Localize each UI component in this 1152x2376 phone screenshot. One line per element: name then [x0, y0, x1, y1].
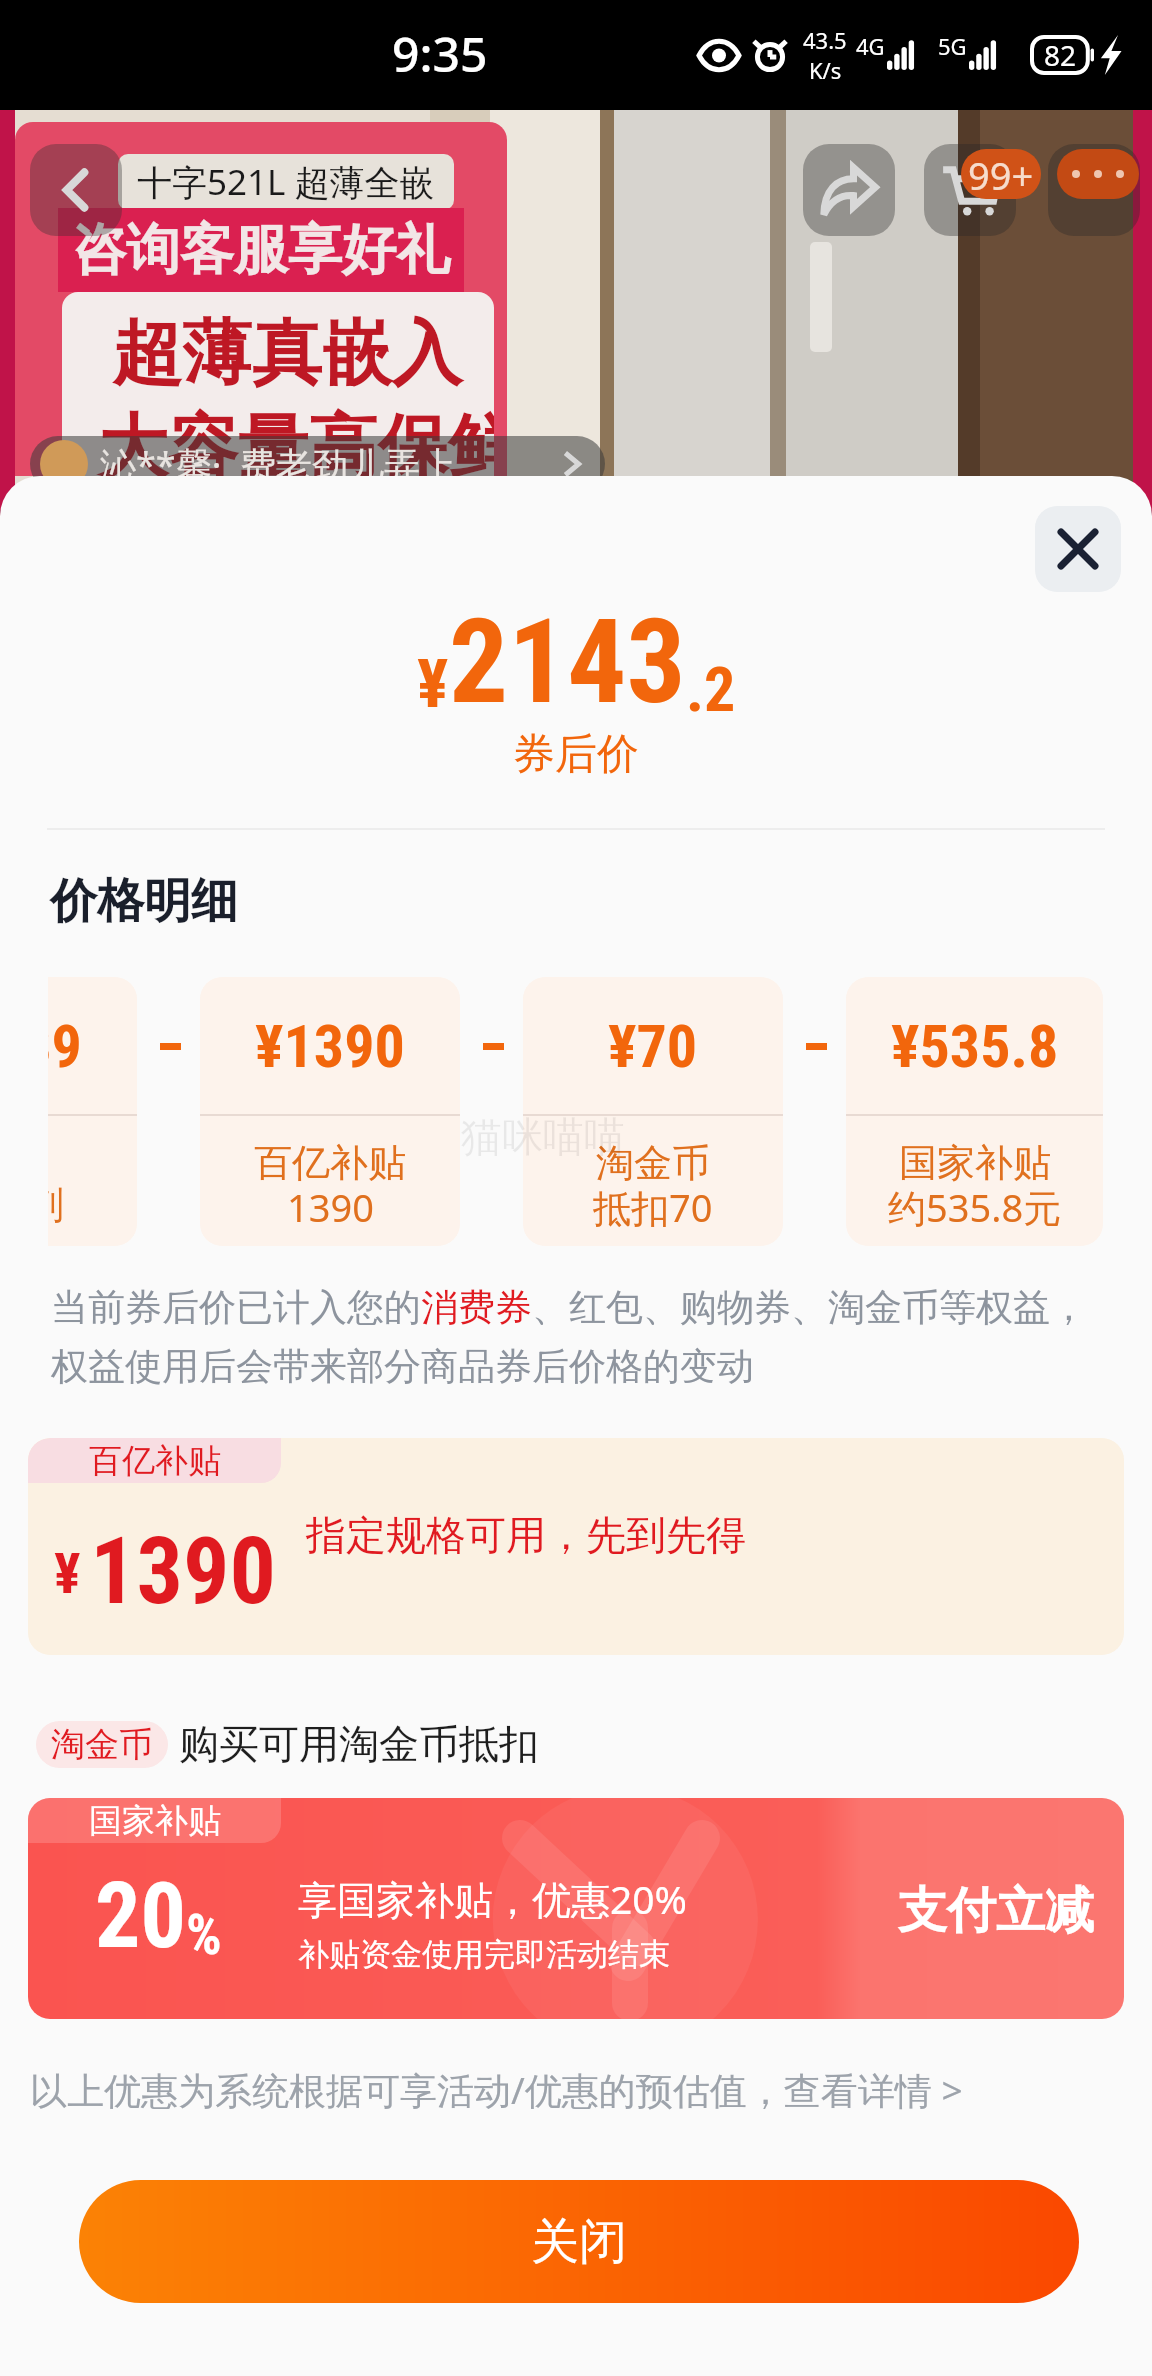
staticText: 淘金币 [51, 1723, 153, 1766]
staticText: 淘金币 [596, 1139, 710, 1187]
staticText: 权益使用后会带来部分商品券后价格的变动 [51, 1343, 754, 1390]
button[interactable]: Back [30, 144, 122, 236]
staticText: 关闭 [531, 2212, 627, 2272]
staticText: 猫咪喵喵 [461, 1112, 625, 1164]
staticText: 指定规格可用，先到先得 [306, 1510, 746, 1560]
staticText: 以上优惠为系统根据可享活动/优惠的预估值，查看详情 > [30, 2064, 963, 2115]
staticText: ¥4139 [48, 1011, 82, 1081]
staticText: ¥ [54, 1541, 81, 1607]
staticText: % [186, 1902, 222, 1968]
staticText: 补贴资金使用完即活动结束 [298, 1935, 670, 1974]
button[interactable]: Close [1035, 506, 1121, 592]
staticText: 券后价 [0, 728, 1152, 781]
button[interactable]: 国家补贴 [28, 1798, 1124, 2019]
staticText: 十字521L 超薄全嵌 [137, 158, 435, 206]
staticText: 沁**馨· 费老劲儿弄上 [100, 440, 457, 489]
staticText: 支付立减 [898, 1880, 1094, 1942]
button[interactable]: Cart [924, 144, 1016, 236]
staticText: 消费券 [421, 1284, 532, 1331]
staticText: 20 [95, 1864, 186, 1969]
staticText: 2143 [449, 593, 686, 730]
button[interactable]: More [1048, 144, 1140, 236]
staticText: 99+ [968, 149, 1034, 199]
button[interactable]: 百亿补贴 [28, 1438, 1124, 1655]
staticText: ¥535.8 [891, 1011, 1059, 1081]
staticText: 到手剂 [48, 1181, 64, 1229]
button[interactable]: 关闭 [79, 2180, 1079, 2303]
staticText: 国家补贴 [89, 1800, 221, 1842]
staticText: 购买可用淘金币抵扣 [179, 1719, 539, 1769]
staticText: 大容量高保鲜 [98, 404, 494, 476]
staticText: 超薄真嵌入 [112, 310, 462, 398]
staticText: K/s [809, 55, 842, 85]
staticText: 1390 [287, 1181, 374, 1233]
staticText: 、红包、购物券、淘金币等权益， [532, 1284, 1087, 1331]
staticText: 享国家补贴，优惠20% [298, 1872, 688, 1925]
staticText: ¥ [417, 646, 449, 723]
staticText: ¥70 [608, 1011, 698, 1081]
staticText: 43.5 [803, 25, 847, 55]
staticText: 抵扣70 [593, 1181, 713, 1233]
staticText: 价格明细 [50, 872, 238, 931]
staticText: 9:35 [392, 21, 488, 86]
staticText: 5G [938, 31, 967, 61]
staticText: 百亿补贴 [254, 1139, 406, 1187]
staticText: ¥1390 [255, 1011, 405, 1081]
staticText: .2 [686, 653, 736, 726]
staticText: 国家补贴 [899, 1139, 1051, 1187]
button[interactable]: Share [803, 144, 895, 236]
staticText: 约535.8元 [888, 1181, 1062, 1233]
staticText: 当前券后价已计入您的 [51, 1284, 421, 1331]
staticText: 百亿补贴 [89, 1440, 221, 1482]
staticText: 4G [856, 31, 885, 61]
staticText: 82 [1044, 36, 1077, 74]
staticText: 1390 [90, 1518, 276, 1626]
staticText: 咨询客服享好礼 [72, 216, 450, 284]
